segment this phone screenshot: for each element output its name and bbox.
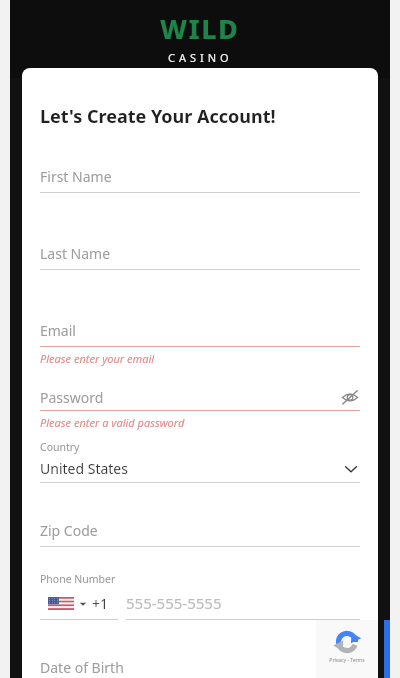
- button[interactable]: Last Name: [40, 244, 360, 270]
- staticText: First Name: [40, 167, 112, 186]
- staticText: Country: [40, 440, 80, 454]
- staticText: Email: [40, 321, 76, 340]
- staticText: Date of Birth: [40, 658, 124, 677]
- button[interactable]: Password: [40, 387, 360, 411]
- staticText: Password: [40, 388, 340, 407]
- staticText: United States: [40, 459, 342, 478]
- staticText: Privacy - Terms: [329, 657, 365, 664]
- button[interactable]: Show password: [340, 387, 360, 407]
- button[interactable]: Zip Code: [40, 521, 360, 547]
- button[interactable]: Country: [40, 440, 360, 483]
- button[interactable]: First Name: [40, 167, 360, 193]
- button[interactable]: reCAPTCHA privacy and terms: [316, 620, 378, 678]
- staticText: Please enter your email: [40, 351, 155, 366]
- staticText: Let's Create Your Account!: [40, 104, 276, 129]
- staticText: Last Name: [40, 244, 111, 263]
- staticText: 555-555-5555: [126, 593, 222, 613]
- staticText: CASINO: [168, 50, 233, 65]
- staticText: +1: [92, 594, 109, 613]
- button[interactable]: Select country code: [40, 594, 118, 620]
- staticText: Please enter a valid password: [40, 415, 185, 430]
- button[interactable]: 555-555-5555: [126, 593, 360, 620]
- staticText: Phone Number: [40, 572, 116, 586]
- button[interactable]: Email: [40, 321, 360, 347]
- button[interactable]: Date of Birth: [40, 658, 360, 678]
- staticText: Zip Code: [40, 521, 98, 540]
- staticText: WILD: [160, 10, 240, 47]
